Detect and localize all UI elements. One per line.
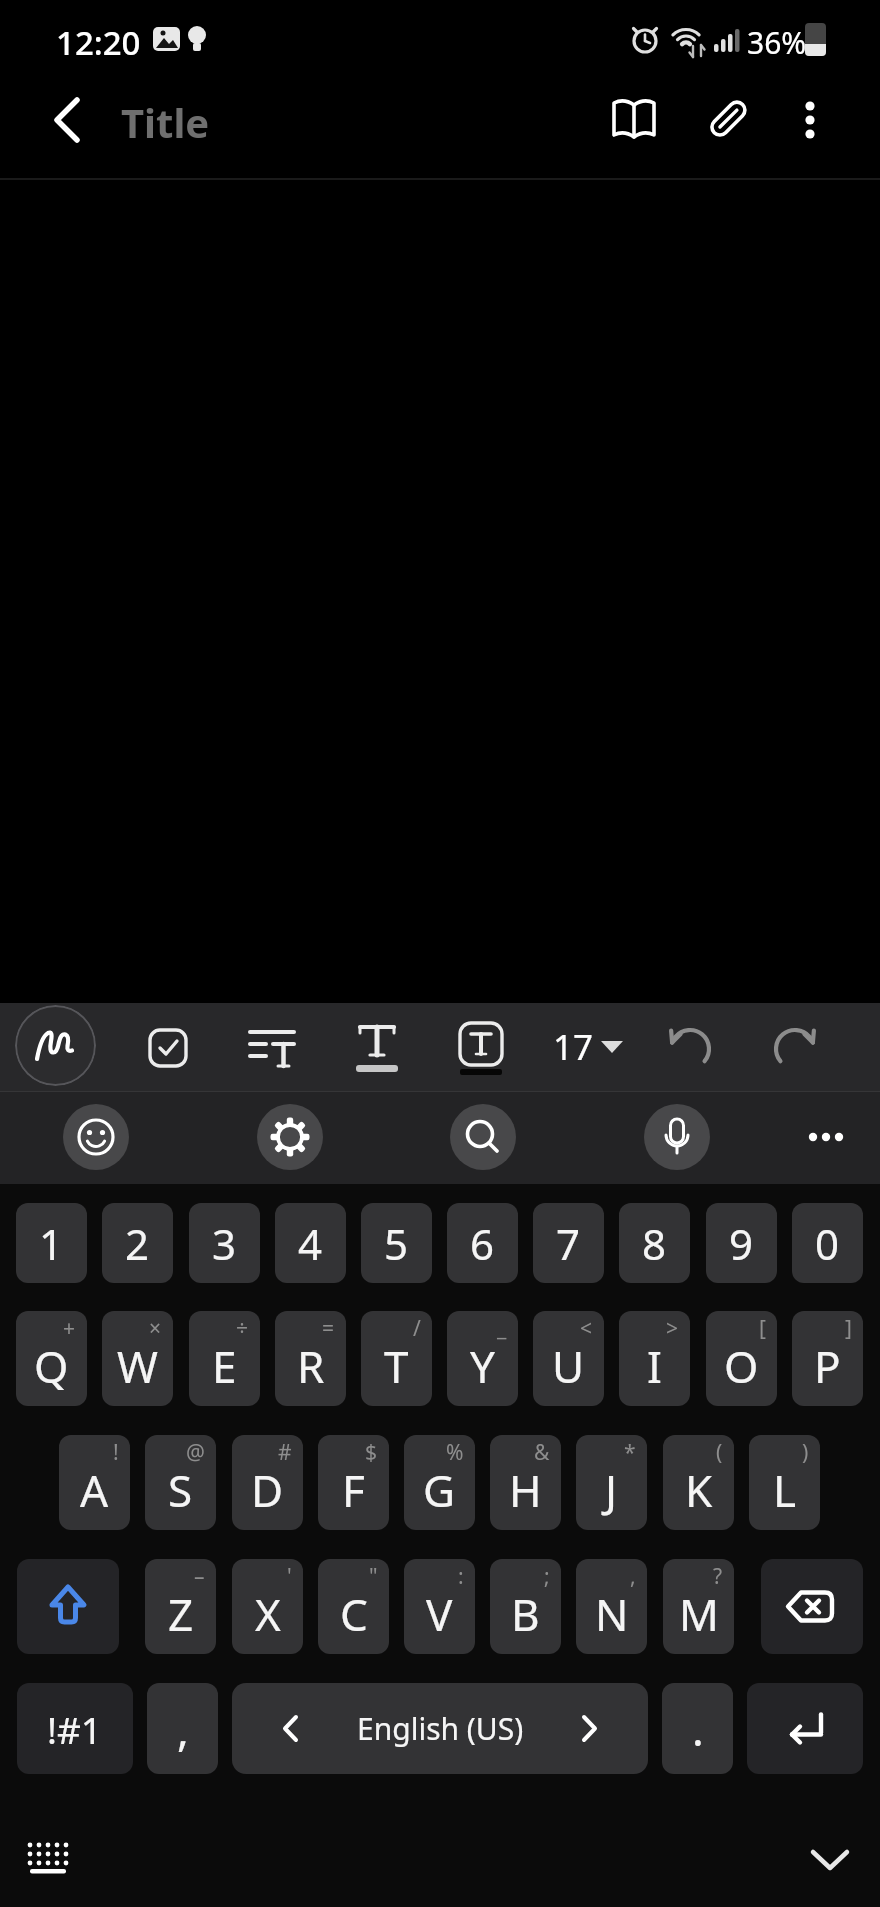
button[interactable]: 6 bbox=[447, 1203, 518, 1283]
button[interactable]: Y bbox=[447, 1311, 518, 1406]
staticText: K bbox=[685, 1460, 713, 1520]
staticText: , bbox=[630, 1562, 636, 1591]
button[interactable]: X bbox=[232, 1559, 303, 1654]
button[interactable] bbox=[644, 1104, 710, 1170]
button[interactable]: E bbox=[189, 1311, 260, 1406]
staticText: ( bbox=[716, 1438, 723, 1467]
staticText: C bbox=[340, 1584, 368, 1644]
button[interactable] bbox=[242, 1017, 302, 1077]
button[interactable]: K bbox=[663, 1435, 734, 1530]
button[interactable]: A bbox=[59, 1435, 130, 1530]
button[interactable] bbox=[450, 1104, 516, 1170]
staticText: – bbox=[194, 1562, 205, 1591]
staticText: ) bbox=[802, 1438, 809, 1467]
button[interactable]: 3 bbox=[189, 1203, 260, 1283]
staticText: 6 bbox=[470, 1215, 495, 1272]
button[interactable]: 17 bbox=[545, 1015, 645, 1077]
button[interactable]: B bbox=[490, 1559, 561, 1654]
staticText: M bbox=[679, 1584, 719, 1644]
button[interactable] bbox=[63, 1104, 129, 1170]
button[interactable]: 5 bbox=[361, 1203, 432, 1283]
button[interactable] bbox=[796, 1104, 862, 1170]
staticText: F bbox=[342, 1460, 365, 1520]
staticText: O bbox=[724, 1336, 759, 1396]
staticText: = bbox=[322, 1314, 335, 1343]
button[interactable] bbox=[18, 1828, 78, 1888]
button[interactable]: P bbox=[792, 1311, 863, 1406]
staticText: 17 bbox=[553, 1023, 594, 1071]
button[interactable]: 8 bbox=[619, 1203, 690, 1283]
button[interactable] bbox=[451, 1011, 511, 1071]
staticText: J bbox=[605, 1460, 618, 1520]
staticText: 3 bbox=[212, 1215, 237, 1272]
button[interactable]: L bbox=[749, 1435, 820, 1530]
button[interactable] bbox=[660, 1015, 720, 1075]
button[interactable]: . bbox=[662, 1683, 733, 1774]
button[interactable]: 7 bbox=[533, 1203, 604, 1283]
button[interactable]: English (US) bbox=[232, 1683, 648, 1774]
button[interactable]: C bbox=[318, 1559, 389, 1654]
staticText: : bbox=[458, 1562, 464, 1591]
button[interactable]: I bbox=[619, 1311, 690, 1406]
staticText: !#1 bbox=[47, 1704, 103, 1754]
button[interactable] bbox=[747, 1683, 863, 1774]
button[interactable]: , bbox=[147, 1683, 218, 1774]
button[interactable] bbox=[780, 90, 840, 150]
button[interactable]: Q bbox=[16, 1311, 87, 1406]
staticText: E bbox=[212, 1336, 237, 1396]
staticText: 9 bbox=[729, 1215, 754, 1272]
button[interactable] bbox=[604, 90, 664, 150]
button[interactable]: H bbox=[490, 1435, 561, 1530]
button[interactable]: N bbox=[576, 1559, 647, 1654]
button[interactable]: W bbox=[102, 1311, 173, 1406]
staticText: Y bbox=[470, 1336, 495, 1396]
button[interactable]: 9 bbox=[706, 1203, 777, 1283]
staticText: % bbox=[446, 1438, 464, 1467]
staticText: # bbox=[278, 1438, 292, 1467]
staticText: ? bbox=[713, 1562, 723, 1591]
staticText: G bbox=[423, 1460, 456, 1520]
button[interactable] bbox=[697, 90, 757, 150]
button[interactable]: T bbox=[361, 1311, 432, 1406]
staticText: ] bbox=[845, 1314, 852, 1343]
button[interactable]: Z bbox=[145, 1559, 216, 1654]
button[interactable]: !#1 bbox=[17, 1683, 133, 1774]
staticText: , bbox=[177, 1699, 189, 1759]
staticText: V bbox=[426, 1584, 453, 1644]
button[interactable]: G bbox=[404, 1435, 475, 1530]
button[interactable]: M bbox=[663, 1559, 734, 1654]
button[interactable]: J bbox=[576, 1435, 647, 1530]
button[interactable]: V bbox=[404, 1559, 475, 1654]
button[interactable] bbox=[15, 1005, 96, 1086]
button[interactable] bbox=[36, 90, 96, 150]
staticText: ! bbox=[113, 1438, 119, 1467]
button[interactable]: 4 bbox=[275, 1203, 346, 1283]
button[interactable] bbox=[765, 1015, 825, 1075]
button[interactable]: U bbox=[533, 1311, 604, 1406]
button[interactable]: R bbox=[275, 1311, 346, 1406]
staticText: Title bbox=[121, 95, 210, 149]
staticText: / bbox=[413, 1314, 421, 1343]
staticText: U bbox=[552, 1336, 585, 1396]
button[interactable] bbox=[347, 1013, 407, 1073]
button[interactable]: F bbox=[318, 1435, 389, 1530]
button[interactable] bbox=[17, 1559, 119, 1654]
button[interactable] bbox=[761, 1559, 863, 1654]
staticText: " bbox=[369, 1562, 378, 1591]
button[interactable]: D bbox=[232, 1435, 303, 1530]
button[interactable] bbox=[800, 1828, 860, 1888]
button[interactable]: S bbox=[145, 1435, 216, 1530]
staticText: D bbox=[251, 1460, 284, 1520]
button[interactable]: 2 bbox=[102, 1203, 173, 1283]
staticText: $ bbox=[365, 1438, 378, 1467]
button[interactable] bbox=[257, 1104, 323, 1170]
staticText: & bbox=[534, 1438, 550, 1467]
button[interactable]: O bbox=[706, 1311, 777, 1406]
staticText: X bbox=[255, 1584, 281, 1644]
staticText: _ bbox=[497, 1314, 507, 1343]
button[interactable]: 1 bbox=[16, 1203, 87, 1283]
staticText: 1 bbox=[39, 1215, 64, 1272]
button[interactable] bbox=[138, 1017, 198, 1077]
button[interactable]: 0 bbox=[792, 1203, 863, 1283]
staticText: H bbox=[509, 1460, 542, 1520]
